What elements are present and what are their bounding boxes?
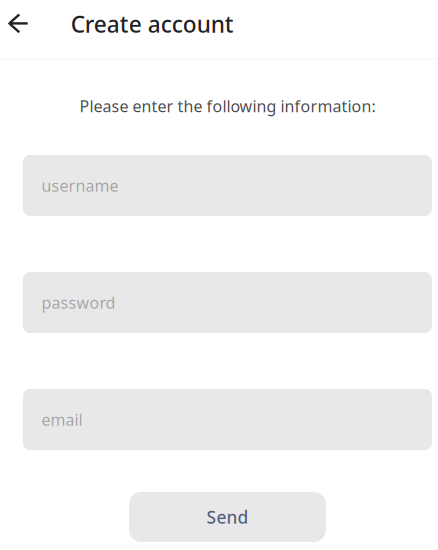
button[interactable]: Send — [129, 492, 326, 542]
staticText: Send — [206, 505, 248, 528]
staticText: Create account — [71, 9, 234, 39]
staticText: password — [41, 292, 115, 313]
staticText: username — [41, 175, 118, 196]
staticText: Please enter the following information: — [79, 95, 375, 117]
button[interactable]: Back — [0, 0, 36, 48]
button[interactable]: email — [23, 389, 432, 450]
staticText: email — [41, 409, 82, 430]
button[interactable]: password — [23, 272, 432, 333]
button[interactable]: username — [23, 155, 432, 216]
